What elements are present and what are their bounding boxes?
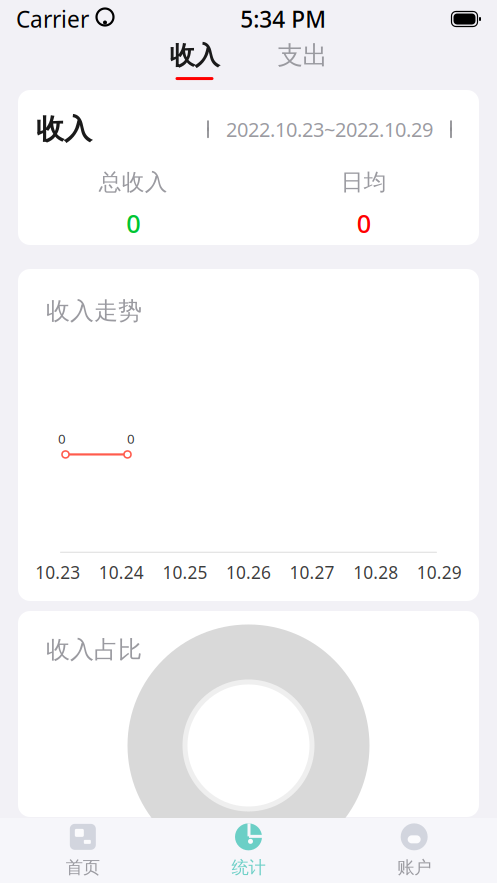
staticText: 收入: [169, 40, 219, 71]
staticText: 10.27: [290, 561, 335, 584]
staticText: 收入占比: [46, 635, 142, 664]
staticText: 0: [357, 206, 371, 240]
staticText: 0: [58, 430, 66, 447]
staticText: 总收入: [99, 168, 168, 196]
staticText: 0: [127, 430, 135, 447]
button[interactable]: Previous period: [198, 115, 222, 143]
button[interactable]: 收入: [149, 40, 239, 80]
staticText: 0: [126, 206, 140, 240]
staticText: 2022.10.23~2022.10.29: [226, 116, 433, 142]
staticText: 统计: [231, 857, 265, 878]
staticText: 5:34 PM: [240, 4, 326, 34]
staticText: 账户: [397, 857, 431, 878]
staticText: 收入: [36, 112, 92, 146]
button[interactable]: 账户: [331, 815, 497, 883]
staticText: 10.23: [35, 561, 80, 584]
staticText: 支出: [277, 40, 327, 71]
staticText: 日均: [341, 168, 387, 196]
staticText: 10.24: [99, 561, 144, 584]
button[interactable]: 首页: [0, 815, 166, 883]
staticText: 10.25: [162, 561, 207, 584]
button[interactable]: 统计: [166, 815, 331, 883]
staticText: Carrier: [16, 4, 89, 34]
staticText: 收入走势: [46, 296, 142, 326]
staticText: 首页: [66, 857, 100, 878]
staticText: 10.29: [417, 561, 462, 584]
button[interactable]: 支出: [257, 40, 347, 80]
staticText: 10.26: [226, 561, 271, 584]
button[interactable]: Next period: [437, 115, 461, 143]
staticText: 10.28: [353, 561, 398, 584]
